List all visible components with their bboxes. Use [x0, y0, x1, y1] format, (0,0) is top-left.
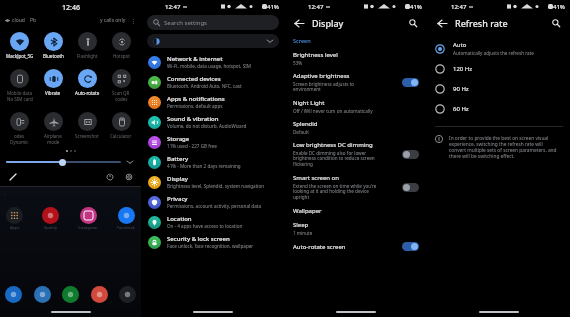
- staticText: Auto: [453, 41, 467, 49]
- button[interactable]: Connected devices: [142, 72, 284, 92]
- button[interactable]: Toggle: [402, 150, 419, 159]
- staticText: 11% used - 227 GB free: [167, 143, 217, 149]
- staticText: Off / Will never turn on automatically: [293, 108, 373, 114]
- button[interactable]: Sound & vibration: [142, 112, 284, 132]
- button[interactable]: Apps & notifications: [142, 92, 284, 112]
- button[interactable]: Toggle: [402, 78, 419, 87]
- button[interactable]: [147, 34, 279, 48]
- staticText: Network & internet: [167, 55, 223, 63]
- button[interactable]: Mobile data: [3, 67, 36, 104]
- staticText: Vibrate: [45, 90, 61, 96]
- staticText: 41% - More than 2 days remaining: [167, 163, 241, 169]
- staticText: Wallpaper: [293, 207, 322, 215]
- staticText: Apps: [10, 225, 20, 230]
- staticText: 12:46: [62, 3, 80, 13]
- button[interactable]: 60 Hz: [428, 102, 570, 116]
- staticText: Calculator: [110, 133, 132, 139]
- staticText: Facebook: [117, 225, 135, 230]
- button[interactable]: Brightness level: [285, 48, 427, 69]
- staticText: Screen: [293, 37, 311, 44]
- staticText: Automatically adjusts the refresh rate: [453, 50, 534, 56]
- button[interactable]: Search: [404, 14, 422, 32]
- button[interactable]: Adaptive brightness: [285, 69, 427, 96]
- button[interactable]: Location: [142, 212, 284, 232]
- button[interactable]: Low brightness DC dimming: [285, 138, 427, 171]
- staticText: Sleep: [293, 221, 309, 229]
- staticText: Brightness level, Splendid, system navig…: [167, 183, 265, 189]
- staticText: Splendid: [293, 120, 318, 128]
- staticText: 12:47: [165, 3, 181, 11]
- button[interactable]: Edit: [7, 171, 18, 182]
- button[interactable]: Apps: [6, 207, 23, 230]
- button[interactable]: App: [34, 286, 51, 303]
- button[interactable]: 90 Hz: [428, 82, 570, 96]
- button[interactable]: Spotify: [42, 207, 59, 230]
- button[interactable]: Auto-rotate screen: [285, 239, 427, 254]
- button[interactable]: Vibrate: [36, 67, 70, 98]
- button[interactable]: Scan QR: [104, 67, 138, 104]
- staticText: Search settings: [164, 19, 207, 27]
- staticText: 120 Hz: [453, 65, 473, 73]
- button[interactable]: Auto-rotate: [70, 67, 104, 98]
- button[interactable]: Battery: [142, 152, 284, 172]
- staticText: ⋮: [130, 17, 136, 24]
- button[interactable]: App: [62, 286, 79, 303]
- button[interactable]: Security & lock screen: [142, 232, 284, 252]
- button[interactable]: Auto: [428, 39, 570, 58]
- staticText: Extend the screen on time while you're l…: [293, 183, 377, 201]
- button[interactable]: Toggle: [402, 183, 419, 192]
- button[interactable]: App: [91, 286, 108, 303]
- button[interactable]: MackJpot_5G: [3, 30, 36, 61]
- button[interactable]: App: [119, 286, 136, 303]
- staticText: Adaptive brightness: [293, 72, 350, 80]
- button[interactable]: Toggle: [402, 242, 419, 251]
- staticText: Apps & notifications: [167, 95, 225, 103]
- button[interactable]: Back: [433, 14, 451, 32]
- button[interactable]: Storage: [142, 132, 284, 152]
- button[interactable]: Display: [142, 172, 284, 192]
- button[interactable]: odes: [3, 110, 36, 147]
- button[interactable]: Expand: [125, 157, 135, 167]
- button[interactable]: Network & internet: [142, 52, 284, 72]
- button[interactable]: Sleep: [285, 218, 427, 239]
- staticText: Screen brightness adjusts to environment: [293, 81, 355, 93]
- button[interactable]: Search settings: [147, 15, 279, 30]
- staticText: Brightness level: [293, 51, 338, 59]
- button[interactable]: Airplane: [36, 110, 70, 147]
- staticText: Pb: [30, 17, 37, 24]
- staticText: Volume, do not disturb, AudioWizard: [167, 123, 247, 129]
- button[interactable]: Calculator: [104, 110, 138, 141]
- button[interactable]: Screenshot: [70, 110, 104, 141]
- staticText: 41%: [267, 3, 279, 11]
- staticText: MackJpot_5G: [6, 53, 34, 59]
- staticText: Spotify: [44, 225, 57, 230]
- button[interactable]: Back: [290, 14, 308, 32]
- button[interactable]: App: [5, 286, 22, 303]
- staticText: In order to provide the best on screen v…: [449, 135, 557, 159]
- button[interactable]: Hotspot: [104, 30, 138, 61]
- staticText: Battery: [167, 155, 189, 163]
- staticText: 12:47: [308, 3, 324, 11]
- staticText: codes: [115, 96, 128, 102]
- button[interactable]: Power: [104, 171, 115, 182]
- button[interactable]: Bluetooth: [36, 30, 70, 61]
- button[interactable]: Flashlight: [70, 30, 104, 61]
- button[interactable]: Brightness: [6, 157, 121, 167]
- button[interactable]: Splendid: [285, 117, 427, 138]
- button[interactable]: Search: [547, 14, 565, 32]
- button[interactable]: Night Light: [285, 96, 427, 117]
- button[interactable]: Privacy: [142, 192, 284, 212]
- staticText: Bluetooth: [43, 53, 64, 59]
- staticText: Security & lock screen: [167, 235, 230, 243]
- button[interactable]: Facebook: [117, 207, 135, 230]
- button[interactable]: Settings: [123, 171, 134, 182]
- button[interactable]: 120 Hz: [428, 62, 570, 76]
- button[interactable]: Smart screen on: [285, 171, 427, 204]
- button[interactable]: Instagram: [78, 207, 98, 230]
- staticText: Low brightness DC dimming: [293, 141, 373, 149]
- staticText: Face unlock, face recognition, wallpaper: [167, 243, 254, 249]
- button[interactable]: Wallpaper: [285, 204, 427, 218]
- staticText: Smart screen on: [293, 174, 339, 182]
- staticText: Night Light: [293, 99, 325, 107]
